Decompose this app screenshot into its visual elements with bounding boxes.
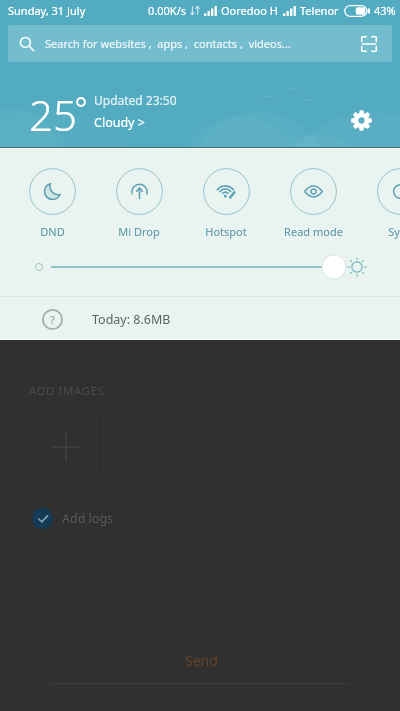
button[interactable]: Settings bbox=[345, 104, 377, 136]
staticText: Sync bbox=[388, 224, 400, 239]
staticText: DND bbox=[40, 224, 65, 239]
staticText: 0.00K/s bbox=[148, 3, 186, 18]
staticText: Hotspot bbox=[205, 224, 247, 239]
staticText: ? bbox=[50, 312, 55, 327]
staticText: Updated 23:50 bbox=[94, 92, 177, 108]
button[interactable]: Updated 23:50 bbox=[94, 92, 177, 131]
staticText: Sunday, 31 July bbox=[8, 3, 86, 18]
button[interactable]: Brightness bbox=[0, 249, 400, 285]
button[interactable]: Search for websites , apps , contacts , … bbox=[8, 25, 392, 62]
button[interactable]: Read mode bbox=[276, 168, 350, 239]
button[interactable]: Add logs bbox=[32, 506, 400, 530]
button[interactable]: DND bbox=[15, 168, 89, 239]
button[interactable]: Send bbox=[27, 641, 370, 684]
staticText: Cloudy > bbox=[94, 114, 145, 131]
staticText: Send bbox=[185, 651, 218, 670]
staticText: ADD IMAGES bbox=[29, 383, 105, 399]
button[interactable]: Scan QR code bbox=[354, 29, 384, 59]
staticText: Telenor bbox=[300, 3, 339, 18]
staticText: Today: 8.6MB bbox=[92, 311, 171, 328]
button[interactable]: ? bbox=[42, 297, 400, 339]
button[interactable]: Sync bbox=[363, 168, 400, 239]
button[interactable]: Hotspot bbox=[189, 168, 263, 239]
staticText: Read mode bbox=[284, 224, 343, 239]
button[interactable]: 25 bbox=[26, 82, 86, 134]
staticText: Add logs bbox=[62, 510, 114, 527]
staticText: 25 bbox=[29, 86, 77, 138]
staticText: 43% bbox=[374, 3, 396, 18]
staticText: Search for websites , apps , contacts , … bbox=[45, 36, 291, 51]
staticText: Mi Drop bbox=[118, 224, 160, 239]
staticText: Ooredoo H bbox=[221, 3, 278, 18]
button[interactable]: Mi Drop bbox=[102, 168, 176, 239]
